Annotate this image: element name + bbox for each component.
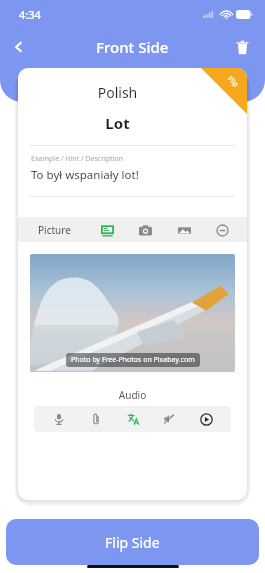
button[interactable]: Mute xyxy=(158,408,180,430)
staticText: Photo by Free-Photos on Pixabay.com xyxy=(71,355,195,365)
button[interactable]: Card picture xyxy=(30,254,235,372)
button[interactable]: Back xyxy=(0,28,38,66)
staticText: To był wspaniały lot! xyxy=(31,167,139,183)
button[interactable]: Remove image xyxy=(211,219,233,241)
staticText: Example / Hint / Description xyxy=(31,154,124,164)
staticText: Lot xyxy=(18,113,217,133)
staticText: Flip xyxy=(225,74,241,90)
button[interactable]: Attach file xyxy=(85,408,107,430)
button[interactable]: Search image xyxy=(96,219,118,241)
button[interactable]: Play xyxy=(195,408,217,430)
button[interactable]: Pick image xyxy=(173,219,195,241)
button[interactable]: Take photo xyxy=(134,219,156,241)
button[interactable]: Flip card xyxy=(201,68,247,114)
staticText: Picture xyxy=(38,223,71,237)
button[interactable]: Flip Side xyxy=(6,519,259,565)
button[interactable]: Record audio xyxy=(48,408,70,430)
button[interactable]: Translate xyxy=(122,408,144,430)
staticText: Flip Side xyxy=(105,533,160,552)
staticText: Front Side xyxy=(96,37,169,57)
staticText: Polish xyxy=(18,83,217,102)
staticText: Audio xyxy=(18,388,247,402)
button[interactable]: Delete xyxy=(225,30,259,64)
staticText: 4:34 xyxy=(19,7,41,22)
